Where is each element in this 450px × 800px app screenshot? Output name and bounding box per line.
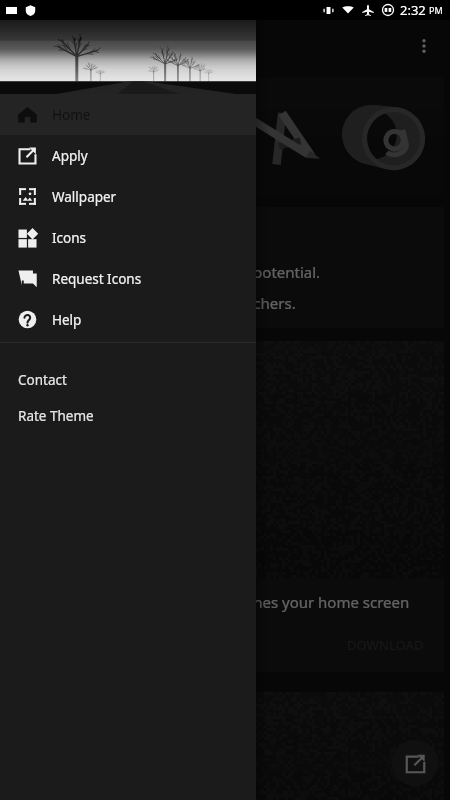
button[interactable]: Rate Theme	[0, 398, 256, 434]
staticText: 2:32	[400, 1, 426, 19]
staticText: Theme your phone to unlock its potential…	[26, 262, 321, 282]
staticText: Icons	[52, 229, 87, 247]
staticText: Home	[52, 106, 91, 124]
staticText: Contact	[18, 371, 67, 389]
staticText: Apply	[52, 147, 88, 165]
button[interactable]: Home	[0, 94, 256, 135]
staticText: PM	[429, 4, 443, 16]
staticText: Help	[52, 311, 82, 329]
button[interactable]: Request Icons	[0, 258, 256, 299]
staticText: DOWNLOAD	[347, 636, 424, 654]
staticText: Works with all your favorite launchers.	[26, 293, 296, 313]
staticText: A beautiful wallpaper that refreshes you…	[26, 592, 410, 612]
button[interactable]: Apply theme	[392, 740, 438, 786]
staticText: Request Icons	[52, 270, 142, 288]
staticText: Wallpaper	[52, 188, 117, 206]
button[interactable]: Icons	[0, 217, 256, 258]
button[interactable]: Help	[0, 299, 256, 340]
button[interactable]: Wallpaper	[0, 176, 256, 217]
button[interactable]: Apply	[0, 135, 256, 176]
button[interactable]: Contact	[0, 362, 256, 398]
staticText: Rate Theme	[18, 407, 94, 425]
button[interactable]: More options	[404, 26, 444, 66]
